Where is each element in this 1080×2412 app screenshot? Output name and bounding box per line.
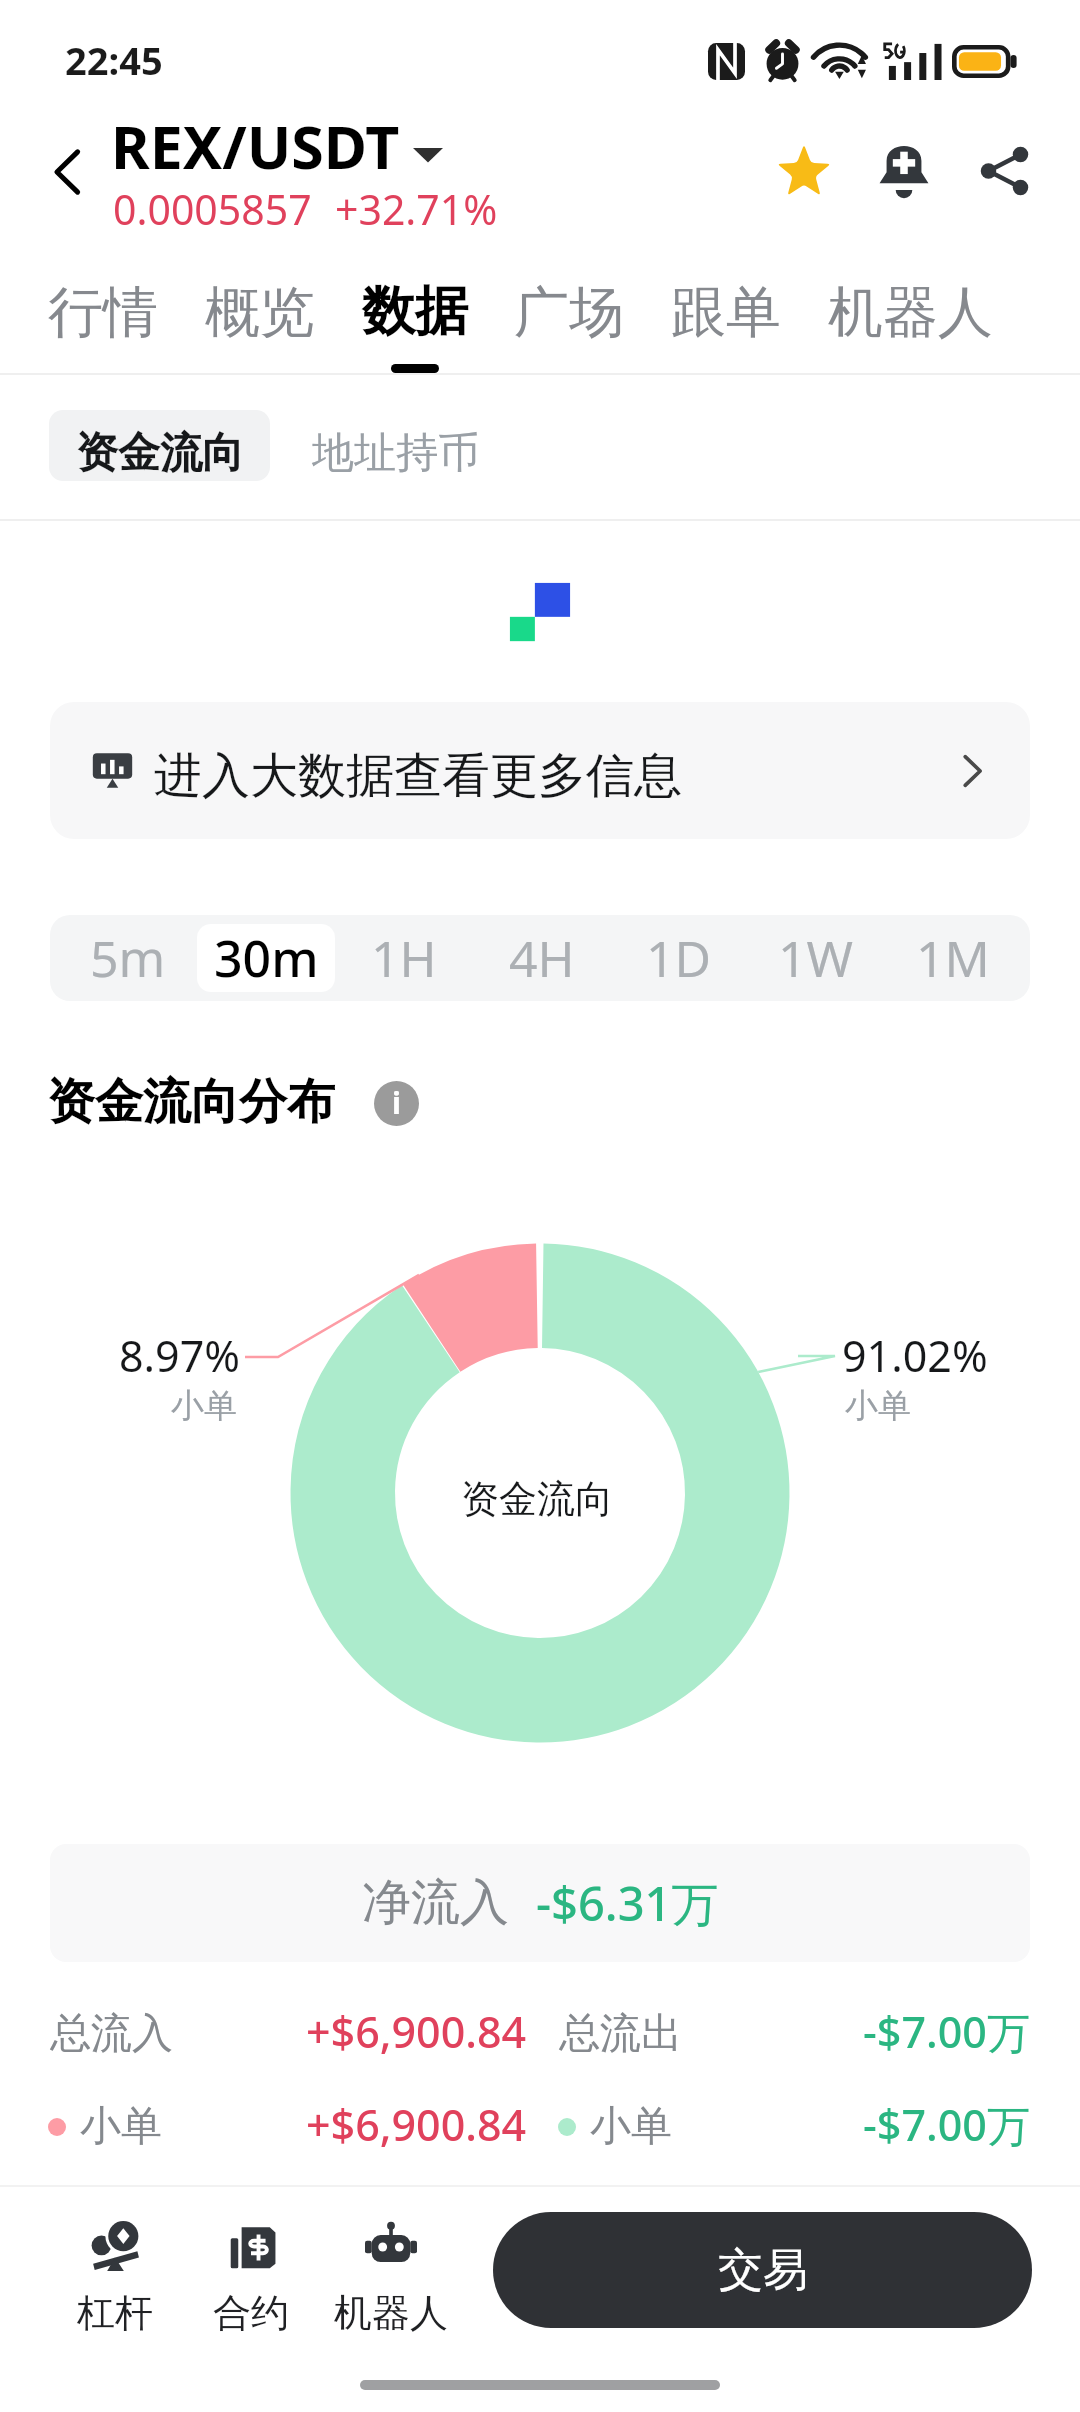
staticText: 小单 <box>171 1385 237 1427</box>
button[interactable]: 地址持币 <box>291 410 501 481</box>
button[interactable]: 1H <box>335 924 473 992</box>
staticText: 概览 <box>205 278 315 347</box>
staticText: 杠杆 <box>77 2289 153 2337</box>
button[interactable]: Info <box>366 1073 426 1133</box>
button[interactable]: 1M <box>884 924 1021 992</box>
button[interactable]: 30m <box>197 924 335 992</box>
staticText: REX/USDT <box>111 106 400 186</box>
button[interactable]: 概览 <box>205 258 315 366</box>
button[interactable]: 资金流向 <box>49 410 270 481</box>
button[interactable]: 数据 <box>362 258 468 373</box>
staticText: 跟单 <box>671 278 781 347</box>
button[interactable]: 广场 <box>514 258 624 366</box>
staticText: 8.97% <box>119 1326 241 1385</box>
button[interactable]: Share <box>954 121 1054 221</box>
staticText: 总流出 <box>559 2008 682 2060</box>
staticText: 1D <box>646 924 712 992</box>
staticText: 广场 <box>514 278 624 347</box>
staticText: 小单 <box>845 1385 911 1427</box>
button[interactable]: 进入大数据查看更多信息 <box>50 702 1030 839</box>
staticText: 进入大数据查看更多信息 <box>154 746 682 806</box>
button[interactable]: 机器人 <box>828 258 993 366</box>
staticText: 交易 <box>718 2242 808 2299</box>
staticText: 1H <box>371 924 437 992</box>
staticText: 0.0005857 <box>113 181 312 237</box>
staticText: 1W <box>778 924 854 992</box>
button[interactable]: 1D <box>610 924 747 992</box>
staticText: 总流入 <box>50 2008 173 2060</box>
staticText: -$7.00万 <box>863 2002 1030 2061</box>
staticText: +32.71% <box>335 181 498 237</box>
button[interactable]: 1W <box>747 924 884 992</box>
staticText: 5m <box>90 924 166 992</box>
button[interactable]: 交易 <box>493 2212 1032 2328</box>
button[interactable]: 杠杆 <box>46 2221 183 2337</box>
button[interactable]: REX/USDT <box>111 106 443 186</box>
button[interactable]: Price alert <box>854 121 954 221</box>
staticText: 行情 <box>48 278 158 347</box>
staticText: 数据 <box>362 278 468 345</box>
staticText: -$6.31万 <box>536 1871 719 1935</box>
button[interactable]: 5m <box>59 924 197 992</box>
staticText: 资金流向 <box>76 427 244 480</box>
button[interactable]: 行情 <box>48 258 158 366</box>
staticText: 1M <box>916 924 990 992</box>
staticText: 机器人 <box>334 2289 448 2337</box>
staticText: 资金流向 <box>461 1475 613 1523</box>
button[interactable]: Favorite <box>754 121 854 221</box>
staticText: 地址持币 <box>312 427 480 480</box>
staticText: +$6,900.84 <box>306 2095 527 2154</box>
staticText: i <box>392 1082 401 1123</box>
button[interactable]: Back <box>22 126 114 218</box>
staticText: +$6,900.84 <box>306 2002 527 2061</box>
staticText: 4H <box>509 924 575 992</box>
staticText: 资金流向分布 <box>47 1072 335 1132</box>
staticText: 小单 <box>590 2101 672 2153</box>
staticText: 净流入 <box>362 1872 509 1934</box>
staticText: 合约 <box>213 2289 289 2337</box>
staticText: 30m <box>214 924 319 992</box>
staticText: 小单 <box>80 2101 162 2153</box>
staticText: -$7.00万 <box>863 2095 1030 2154</box>
staticText: 22:45 <box>65 34 163 86</box>
button[interactable]: 合约 <box>182 2221 319 2337</box>
button[interactable]: 机器人 <box>322 2221 459 2337</box>
button[interactable]: 4H <box>473 924 610 992</box>
button[interactable]: 跟单 <box>671 258 781 366</box>
staticText: 91.02% <box>842 1326 988 1385</box>
staticText: 机器人 <box>828 278 993 347</box>
